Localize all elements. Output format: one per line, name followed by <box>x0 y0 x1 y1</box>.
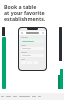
button[interactable]: Menu <box>18 27 47 71</box>
button[interactable] <box>21 54 44 57</box>
other: Menu <box>21 32 23 34</box>
button[interactable] <box>21 39 44 43</box>
button[interactable] <box>13 96 17 97</box>
button[interactable] <box>32 96 36 97</box>
button[interactable] <box>21 47 44 50</box>
staticText: Book a table at your favorite establishm… <box>4 3 46 23</box>
